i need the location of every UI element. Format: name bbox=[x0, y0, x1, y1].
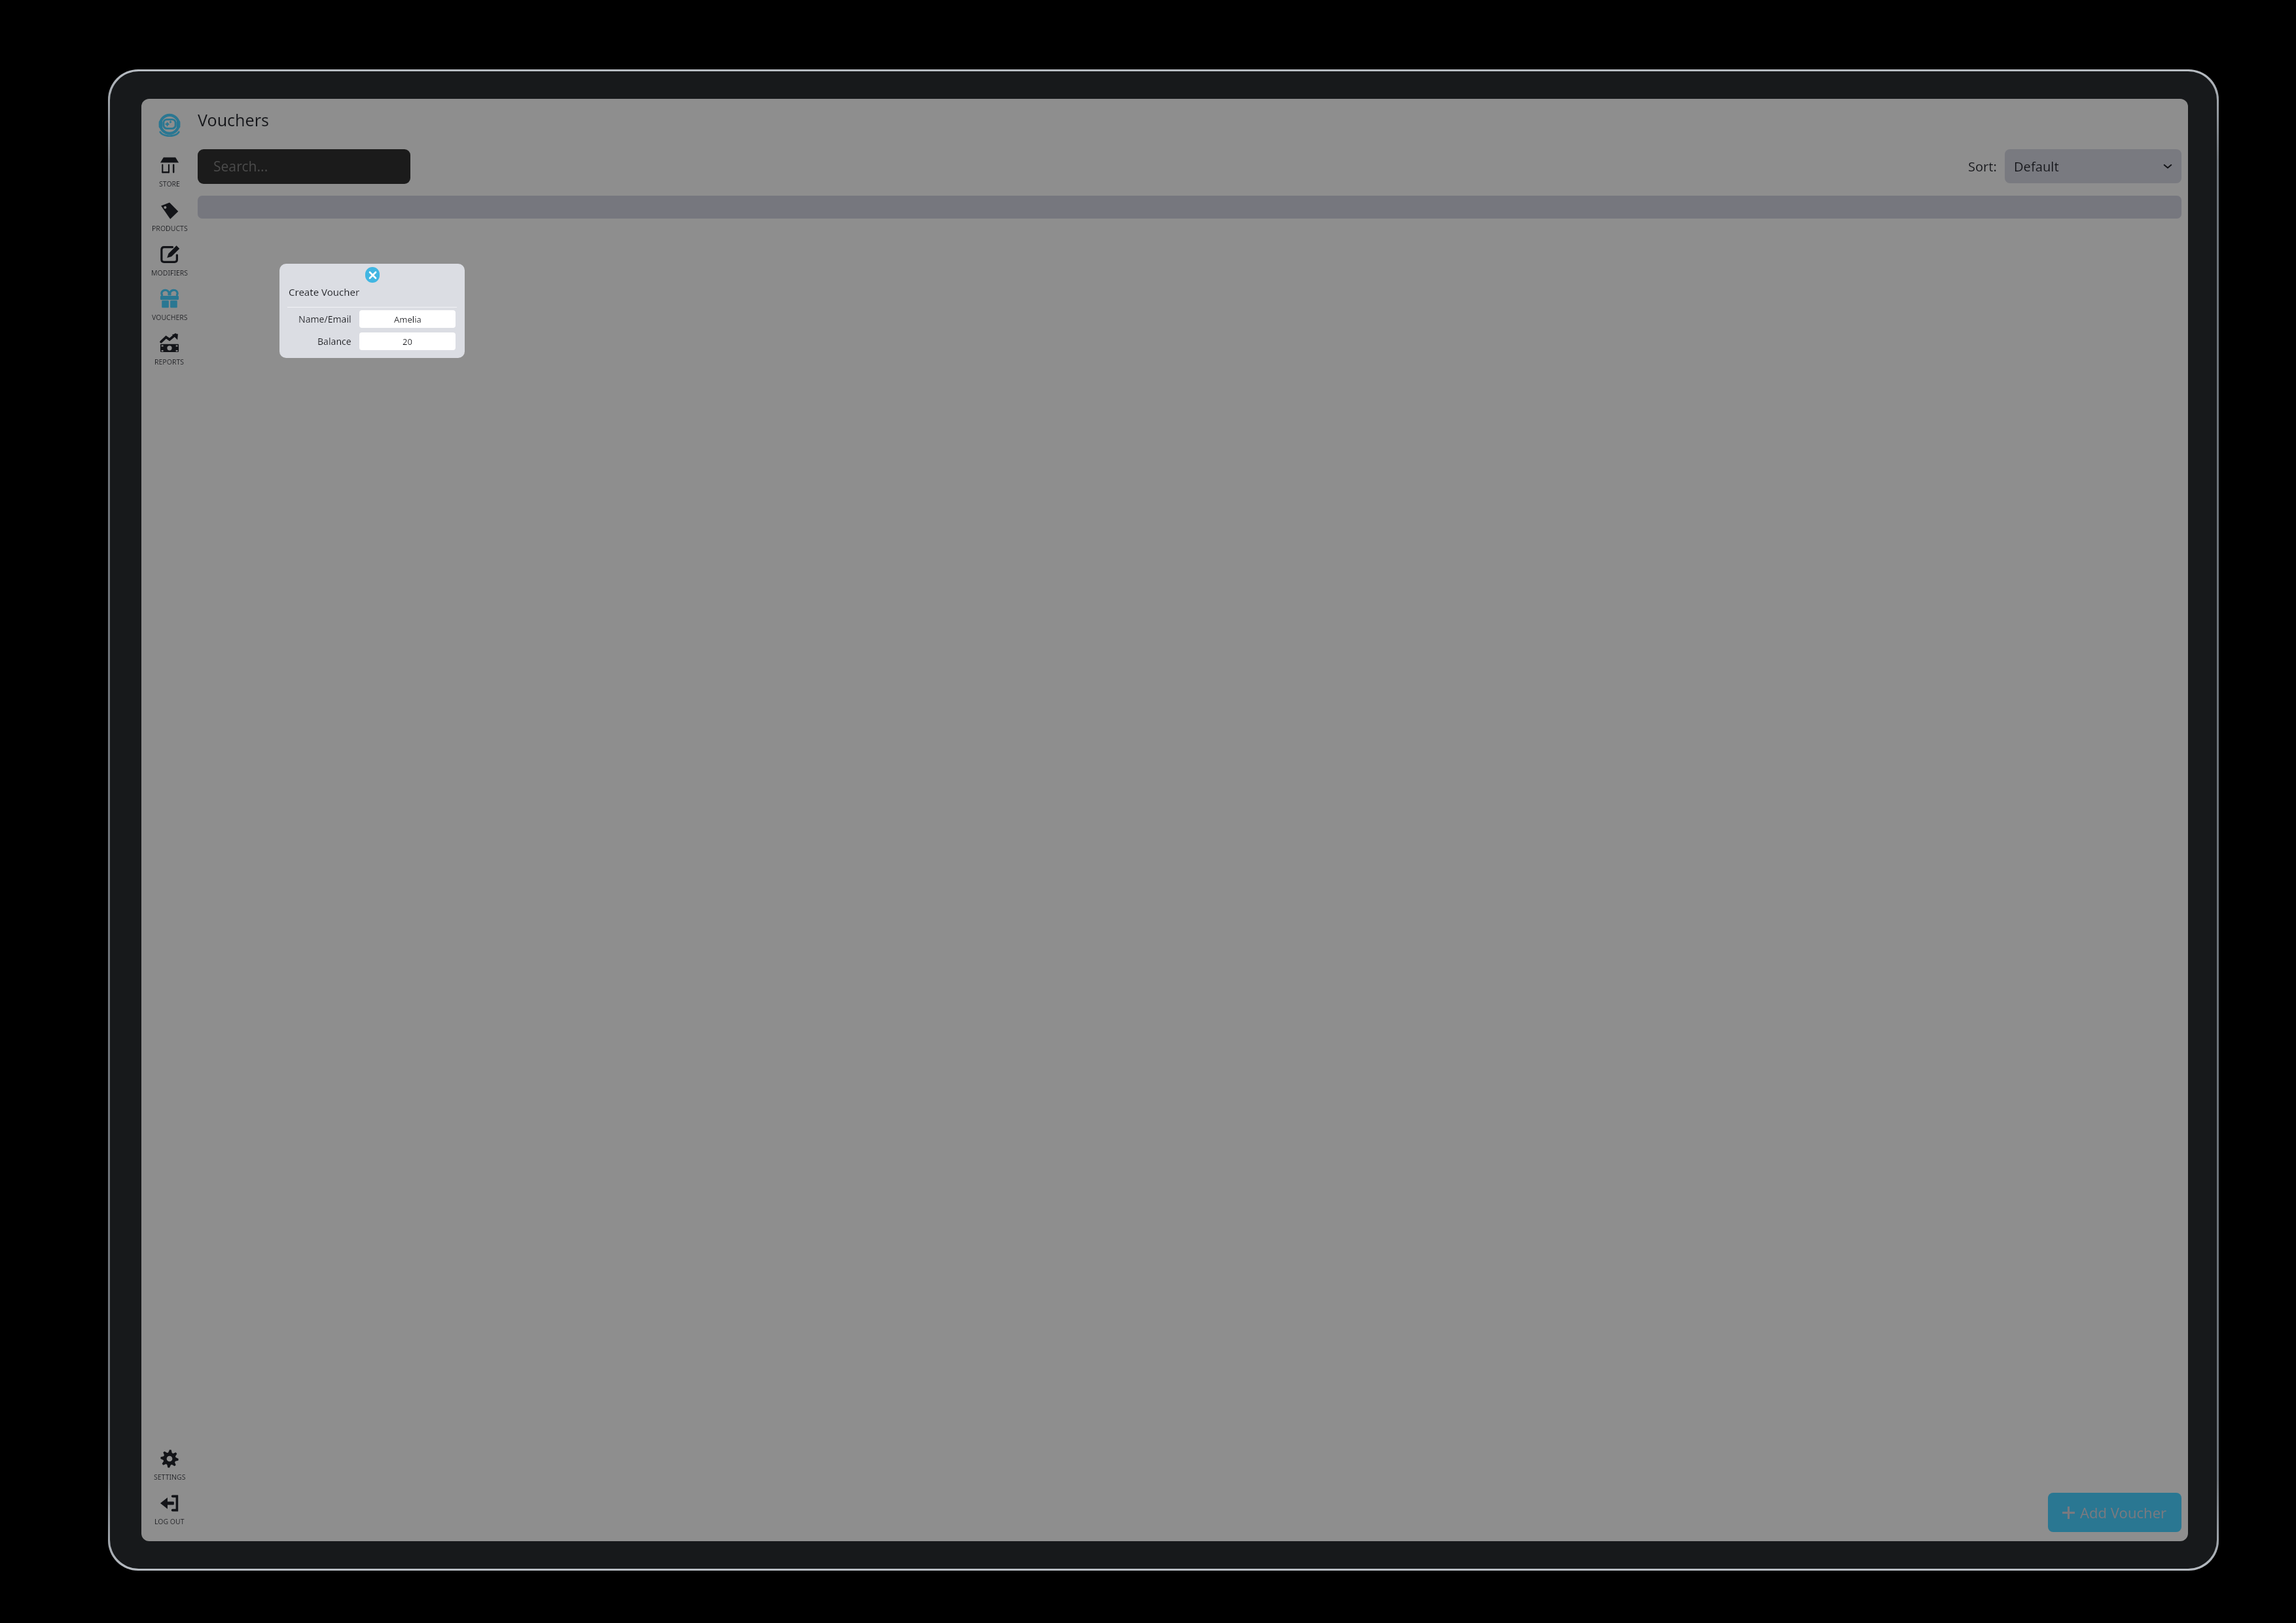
button[interactable]: MODIFIERS bbox=[141, 238, 198, 282]
button[interactable]: STORE bbox=[141, 149, 198, 193]
button[interactable]: PRODUCTS bbox=[141, 193, 198, 238]
staticText: Vouchers bbox=[198, 109, 269, 131]
button[interactable]: Amelia bbox=[359, 310, 456, 328]
staticText: STORE bbox=[159, 179, 180, 188]
button[interactable]: LOG OUT bbox=[141, 1486, 198, 1531]
staticText: Sort: bbox=[1968, 158, 1997, 175]
staticText: SETTINGS bbox=[154, 1472, 186, 1482]
button[interactable]: 20 bbox=[359, 332, 456, 350]
staticText: VOUCHERS bbox=[152, 313, 188, 322]
staticText: Amelia bbox=[394, 313, 422, 325]
button[interactable]: Search... bbox=[198, 149, 410, 184]
staticText: Add Voucher bbox=[2080, 1503, 2167, 1522]
other: App logo bbox=[157, 113, 182, 137]
staticText: Create Voucher bbox=[289, 285, 360, 298]
button[interactable]: VOUCHERS bbox=[141, 282, 198, 327]
staticText: Default bbox=[2014, 158, 2059, 175]
staticText: Balance bbox=[317, 335, 351, 348]
staticText: Name/Email bbox=[298, 313, 351, 325]
staticText: Search... bbox=[213, 157, 268, 176]
staticText: PRODUCTS bbox=[152, 224, 188, 233]
staticText: REPORTS bbox=[154, 357, 185, 366]
button[interactable]: SETTINGS bbox=[141, 1442, 198, 1486]
button[interactable]: Close bbox=[365, 267, 380, 283]
staticText: MODIFIERS bbox=[151, 268, 188, 277]
button[interactable]: Add Voucher bbox=[2048, 1493, 2181, 1532]
staticText: 20 bbox=[403, 336, 412, 348]
button[interactable]: REPORTS bbox=[141, 327, 198, 371]
button[interactable]: App logo bbox=[155, 111, 184, 139]
staticText: LOG OUT bbox=[154, 1517, 185, 1526]
button[interactable]: Default bbox=[2005, 149, 2181, 183]
